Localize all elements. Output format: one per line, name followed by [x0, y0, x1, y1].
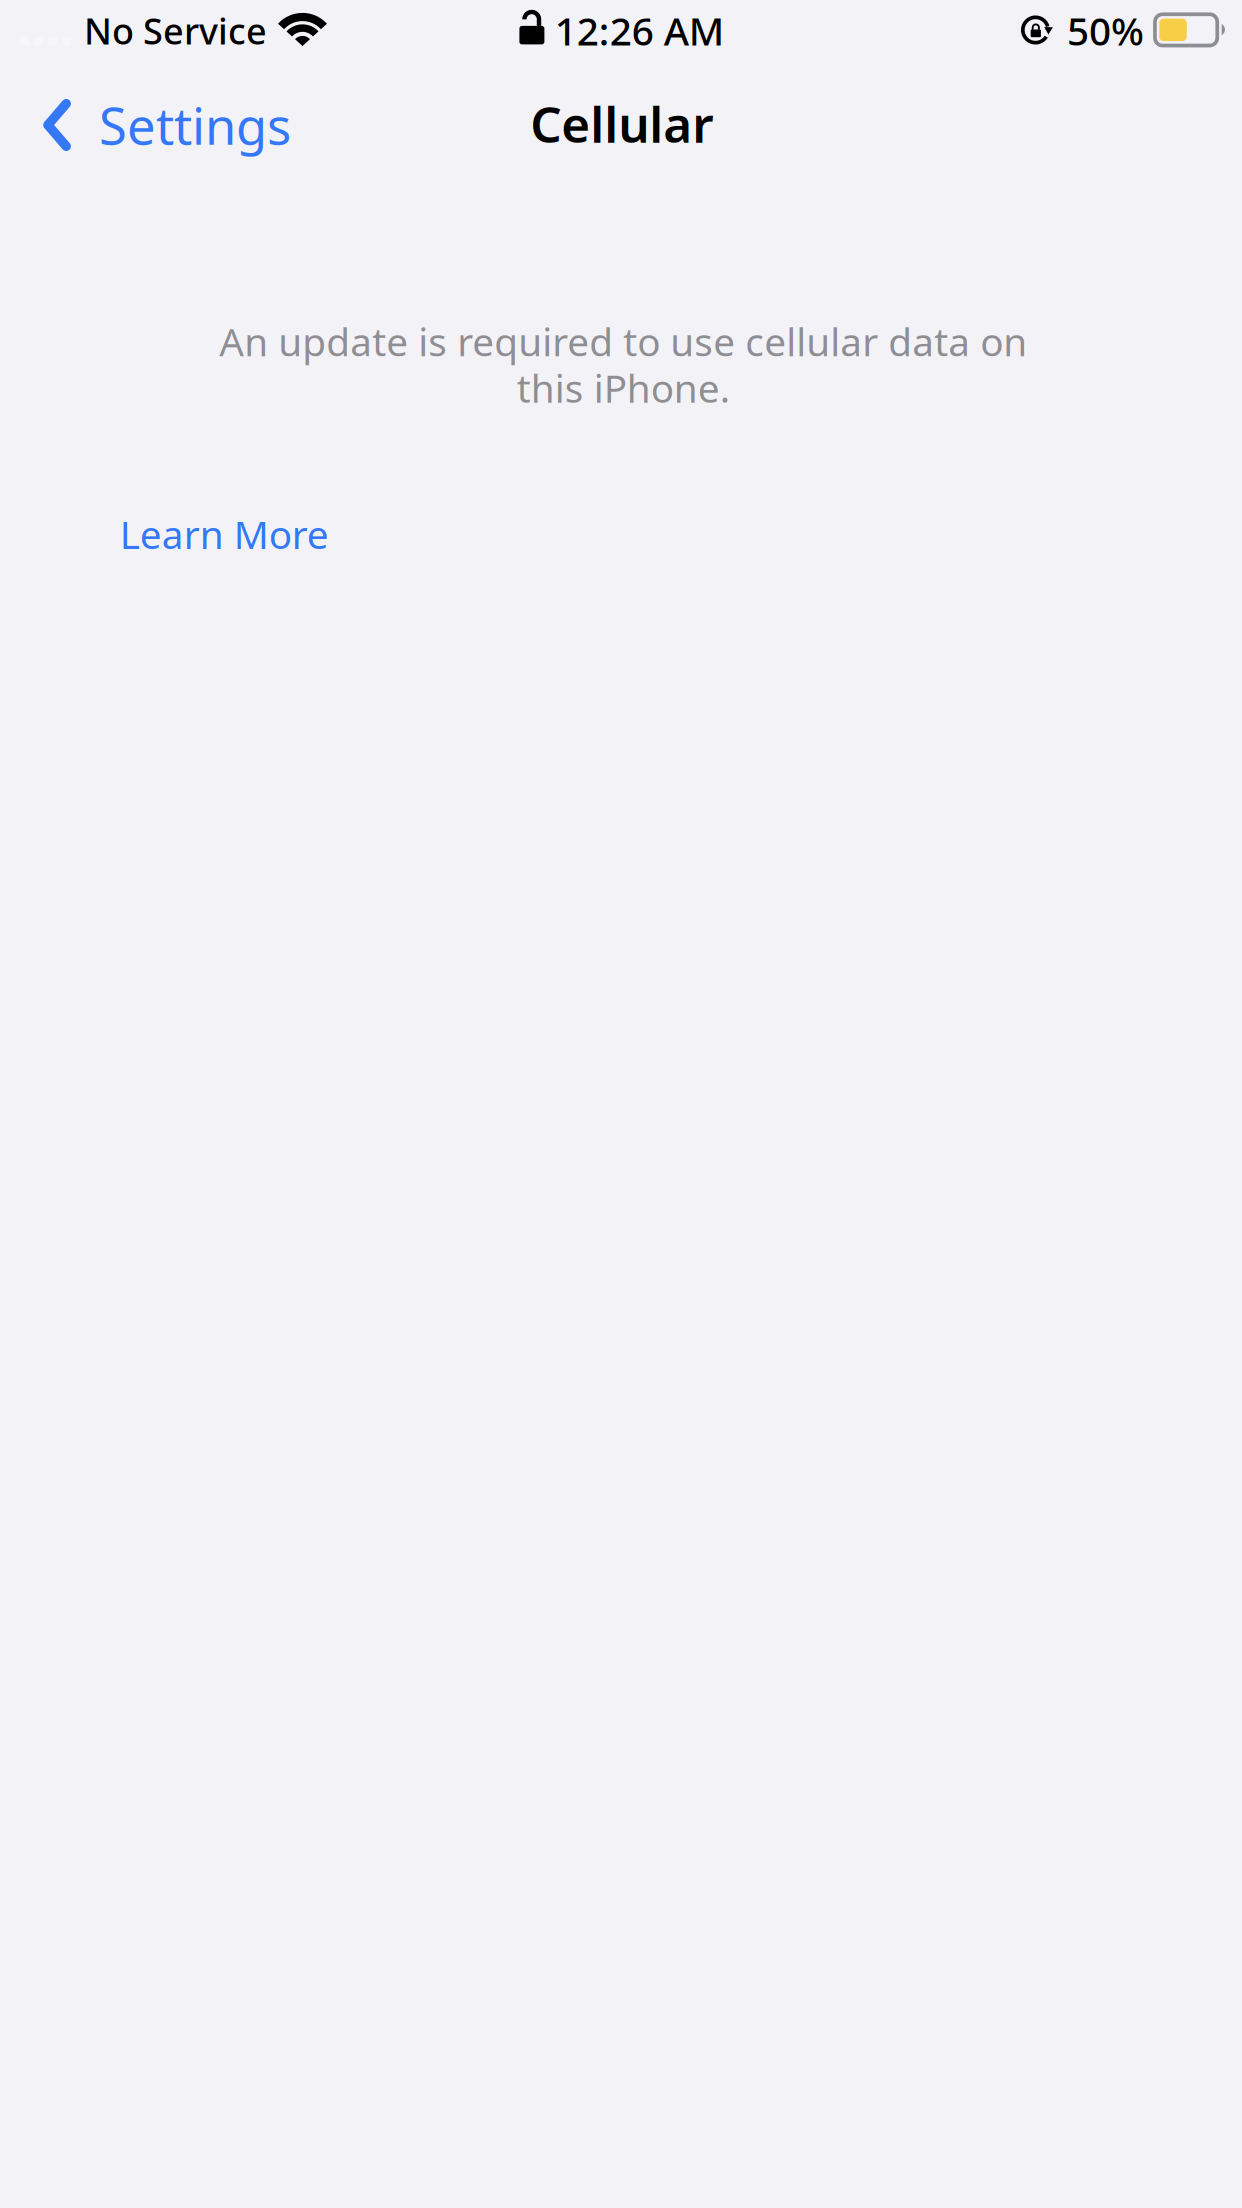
- staticText: Settings: [99, 91, 291, 159]
- button[interactable]: Settings: [33, 77, 301, 173]
- staticText: 50%: [1067, 5, 1144, 56]
- staticText: An update is required to use cellular da…: [219, 316, 1027, 413]
- staticText: No Service: [84, 7, 267, 54]
- staticText: Learn More: [120, 508, 329, 560]
- button[interactable]: Learn More: [111, 495, 338, 573]
- staticText: 12:26 AM: [555, 5, 724, 56]
- staticText: Cellular: [530, 91, 713, 156]
